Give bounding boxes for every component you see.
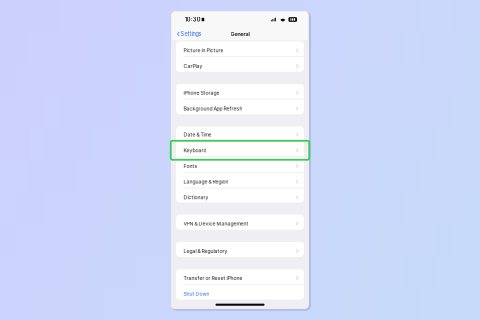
button[interactable]: Date & Time bbox=[176, 125, 304, 141]
staticText: Settings bbox=[180, 31, 201, 37]
button[interactable]: iPhone Storage bbox=[176, 84, 304, 99]
button[interactable]: Background App Refresh bbox=[176, 99, 304, 115]
button[interactable]: Shut Down bbox=[176, 285, 304, 300]
staticText: Dictionary bbox=[183, 194, 208, 200]
button[interactable]: Picture in Picture bbox=[176, 41, 304, 56]
staticText: Language & Region bbox=[183, 179, 228, 185]
button[interactable]: Language & Region bbox=[176, 172, 304, 188]
staticText: Background App Refresh bbox=[183, 105, 242, 112]
button[interactable]: Fonts bbox=[176, 157, 304, 172]
staticText: Legal & Regulatory bbox=[183, 248, 227, 254]
staticText: General bbox=[230, 31, 249, 37]
staticText: iPhone Storage bbox=[183, 90, 219, 96]
staticText: Picture in Picture bbox=[183, 47, 223, 53]
staticText: CarPlay bbox=[183, 63, 202, 69]
button[interactable]: Settings bbox=[171, 29, 201, 39]
button[interactable]: Legal & Regulatory bbox=[176, 242, 304, 257]
staticText: Shut Down bbox=[183, 291, 209, 297]
button[interactable]: Dictionary bbox=[176, 188, 304, 203]
button[interactable]: Keyboard bbox=[176, 141, 304, 156]
button[interactable]: Transfer or Reset iPhone bbox=[176, 269, 304, 284]
staticText: VPN & Device Management bbox=[183, 221, 248, 227]
button[interactable]: CarPlay bbox=[176, 57, 304, 72]
button[interactable]: VPN & Device Management bbox=[176, 214, 304, 230]
staticText: Fonts bbox=[183, 163, 197, 169]
staticText: Keyboard bbox=[183, 147, 206, 153]
staticText: Transfer or Reset iPhone bbox=[183, 275, 242, 281]
staticText: 10:30 bbox=[185, 16, 201, 23]
staticText: Date & Time bbox=[183, 132, 211, 138]
